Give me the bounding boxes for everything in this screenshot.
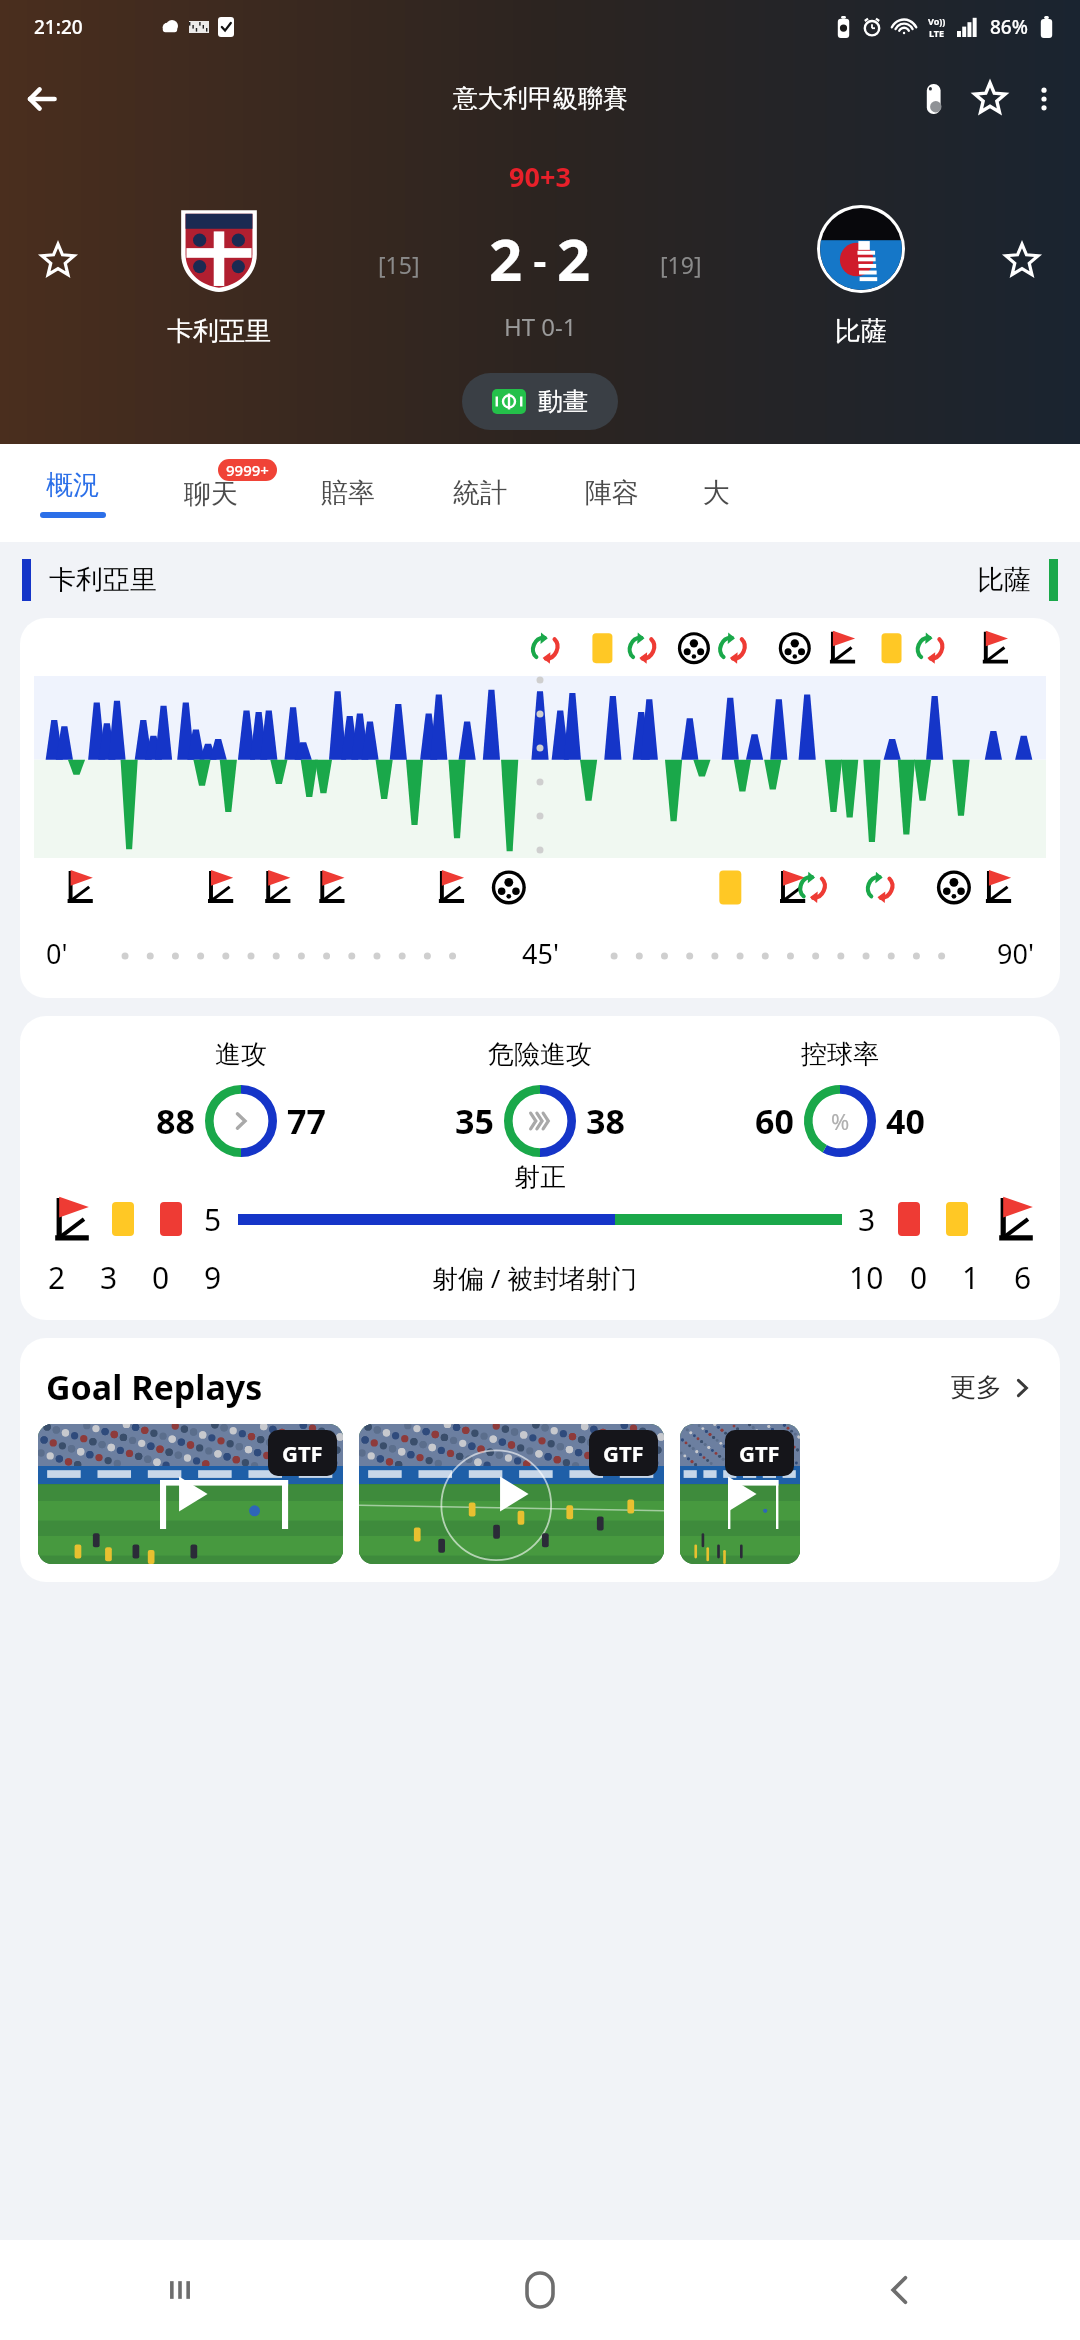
button[interactable]: GTF <box>359 1424 664 1564</box>
button[interactable]: Home <box>360 2240 720 2340</box>
staticText: 更多 <box>950 1371 1002 1404</box>
staticText: 38 <box>586 1098 625 1144</box>
staticText: 進攻 <box>215 1038 267 1071</box>
button[interactable]: 陣容 <box>577 476 647 510</box>
staticText: [15] <box>378 249 420 280</box>
button[interactable]: 動畫 <box>462 373 618 430</box>
button[interactable]: 賠率 <box>313 476 383 510</box>
staticText: 卡利亞里 <box>167 315 271 348</box>
staticText: 2 <box>489 219 523 298</box>
staticText: 77 <box>287 1098 326 1144</box>
button[interactable]: 統計 <box>445 476 515 510</box>
button[interactable]: 聊天 <box>176 475 251 511</box>
staticText: 0 <box>910 1257 928 1298</box>
staticText: 0' <box>46 935 68 972</box>
staticText: 5 <box>204 1199 222 1240</box>
staticText: 86% <box>990 14 1028 40</box>
staticText: 聊天 <box>184 477 238 511</box>
staticText: 90' <box>997 935 1034 972</box>
staticText: GTF <box>739 1438 780 1468</box>
staticText: 概況 <box>46 468 100 502</box>
staticText: GTF <box>282 1438 323 1468</box>
button[interactable]: Favourite Cagliari <box>30 233 86 289</box>
staticText: 21:20 <box>34 14 83 40</box>
staticText: 卡利亞里 <box>49 563 157 597</box>
staticText: 45' <box>522 935 559 972</box>
staticText: 比薩 <box>977 563 1031 597</box>
staticText: 射正 <box>514 1161 566 1194</box>
staticText: 危險進攻 <box>488 1038 592 1071</box>
button[interactable]: 更多 <box>944 1365 1038 1410</box>
button[interactable]: Back <box>14 71 70 127</box>
staticText: 9 <box>204 1257 222 1298</box>
button[interactable]: 概況 <box>32 468 114 518</box>
staticText: 6 <box>1014 1257 1032 1298</box>
staticText: 2 <box>48 1257 66 1298</box>
button[interactable]: Favourite <box>962 71 1018 127</box>
staticText: LTE <box>929 27 945 39</box>
button[interactable]: 0' <box>20 618 1060 998</box>
staticText: % <box>831 1106 850 1136</box>
staticText: GTF <box>603 1438 644 1468</box>
staticText: 90+3 <box>0 158 1080 195</box>
button[interactable]: 大 <box>703 476 730 510</box>
staticText: 88 <box>156 1098 195 1144</box>
staticText: Vo)) <box>928 15 946 27</box>
staticText: 0 <box>152 1257 170 1298</box>
staticText: 60 <box>755 1098 794 1144</box>
staticText: 比薩 <box>835 315 887 348</box>
staticText: 35 <box>455 1098 494 1144</box>
button[interactable]: More options <box>1018 73 1070 125</box>
button[interactable]: Recent apps <box>0 2240 360 2340</box>
staticText: HT 0-1 <box>504 310 577 343</box>
button[interactable]: Favourite Pisa <box>994 233 1050 289</box>
staticText: 2 <box>557 219 591 298</box>
staticText: 3 <box>100 1257 118 1298</box>
staticText: 1 <box>962 1257 980 1298</box>
staticText: 控球率 <box>801 1038 879 1071</box>
button[interactable]: GTF <box>38 1424 343 1564</box>
staticText: 意大利甲級聯賽 <box>453 83 628 114</box>
staticText: 射偏 / 被封堵射门 <box>432 1260 638 1296</box>
staticText: 統計 <box>453 476 507 510</box>
staticText: Goal Replays <box>46 1364 263 1410</box>
staticText: 40 <box>886 1098 925 1144</box>
staticText: 3 <box>858 1199 876 1240</box>
staticText: 大 <box>703 476 730 510</box>
staticText: 陣容 <box>585 476 639 510</box>
staticText: [19] <box>660 249 702 280</box>
staticText: 動畫 <box>538 386 588 417</box>
button[interactable]: 進攻 <box>20 1016 1060 1320</box>
button[interactable]: GTF <box>680 1424 800 1564</box>
staticText: 賠率 <box>321 476 375 510</box>
button[interactable]: Cast to device <box>906 71 962 127</box>
staticText: 9999+ <box>226 460 269 480</box>
button[interactable]: Back <box>720 2240 1080 2340</box>
staticText: 10 <box>849 1257 884 1298</box>
staticText: - <box>523 232 557 286</box>
